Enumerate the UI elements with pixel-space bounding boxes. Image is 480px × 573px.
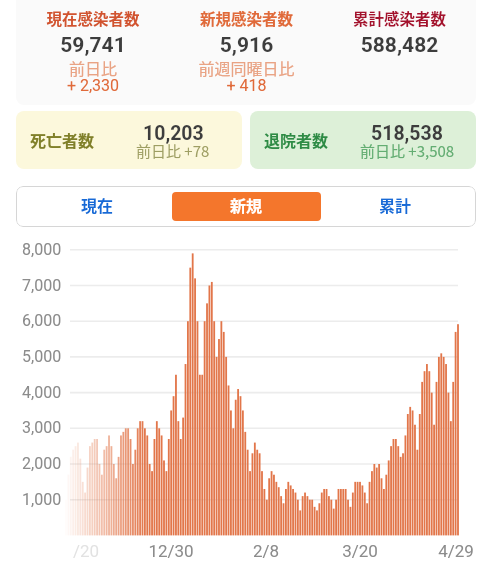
staticText: 4/29 (432, 541, 480, 561)
staticText: 3,000 (22, 418, 62, 437)
button[interactable]: 退院者数 (250, 111, 476, 169)
staticText: 3/20 (336, 541, 384, 561)
staticText: 7,000 (22, 276, 62, 295)
staticText: 退院者数 (264, 128, 329, 151)
staticText: 前日比 +78 (136, 140, 210, 162)
staticText: /20 (62, 541, 110, 561)
staticText: 新規 (230, 193, 263, 216)
staticText: 前日比 (16, 56, 170, 79)
button[interactable]: 死亡者数 (16, 111, 242, 169)
staticText: 累計 (379, 193, 412, 216)
staticText: + 2,330 (16, 76, 170, 95)
staticText: 現在感染者数 (16, 7, 170, 29)
button[interactable]: 累計 (321, 192, 470, 221)
staticText: + 418 (170, 76, 323, 95)
staticText: 518,538 (371, 122, 443, 145)
button[interactable]: 現在 (22, 192, 172, 221)
staticText: 8,000 (22, 240, 62, 259)
staticText: 5,916 (170, 33, 323, 58)
staticText: 累計感染者数 (323, 7, 476, 29)
staticText: 1,000 (22, 490, 62, 509)
staticText: 4,000 (22, 383, 62, 402)
staticText: 2,000 (22, 454, 62, 473)
staticText: 2/8 (242, 541, 290, 561)
staticText: 前日比 +3,508 (360, 140, 455, 162)
staticText: 死亡者数 (30, 128, 95, 151)
staticText: 新規感染者数 (170, 7, 323, 29)
staticText: 5,000 (22, 347, 62, 366)
staticText: 12/30 (147, 541, 195, 561)
button[interactable]: 新規 (172, 192, 321, 221)
staticText: 10,203 (143, 122, 204, 145)
staticText: 現在 (81, 193, 114, 216)
staticText: 6,000 (22, 311, 62, 330)
staticText: 588,482 (323, 33, 476, 58)
staticText: 前週同曜日比 (170, 56, 323, 79)
staticText: 59,741 (16, 33, 170, 58)
